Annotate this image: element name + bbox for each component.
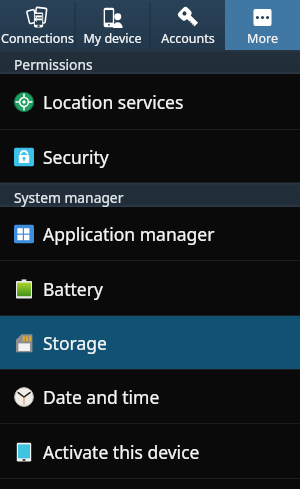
other: Location services — [14, 92, 34, 112]
button[interactable]: Battery — [0, 261, 300, 316]
staticText: Security — [43, 145, 109, 169]
button[interactable]: Connections — [0, 0, 75, 50]
other: More — [252, 7, 273, 28]
button[interactable]: More — [225, 0, 300, 50]
other: Storage — [14, 333, 34, 353]
staticText: Application manager — [43, 222, 215, 246]
other: Battery — [14, 279, 34, 299]
staticText: Connections — [1, 30, 74, 47]
staticText: Activate this device — [43, 440, 200, 464]
other: Connections — [27, 7, 48, 28]
staticText: Battery — [43, 277, 103, 301]
staticText: Date and time — [43, 385, 160, 409]
other: Application manager — [14, 224, 34, 244]
button[interactable]: Storage — [0, 316, 300, 370]
button[interactable]: Accounts — [150, 0, 225, 50]
button[interactable]: My device — [75, 0, 150, 50]
button[interactable]: Security — [0, 130, 300, 183]
other: Date and time — [14, 387, 34, 407]
other: Activate this device — [14, 442, 34, 462]
other: Security — [14, 147, 34, 167]
staticText: System manager — [14, 188, 124, 207]
other: Accounts — [178, 7, 199, 28]
other: My device — [102, 7, 123, 28]
button[interactable]: Activate this device — [0, 424, 300, 479]
staticText: Location services — [43, 90, 184, 114]
staticText: Storage — [43, 331, 107, 355]
button[interactable]: Location services — [0, 74, 300, 130]
button[interactable]: Date and time — [0, 370, 300, 424]
staticText: More — [247, 30, 278, 47]
staticText: My device — [83, 30, 142, 47]
button[interactable]: Application manager — [0, 207, 300, 261]
staticText: Accounts — [161, 30, 215, 47]
staticText: Permissions — [14, 55, 93, 74]
